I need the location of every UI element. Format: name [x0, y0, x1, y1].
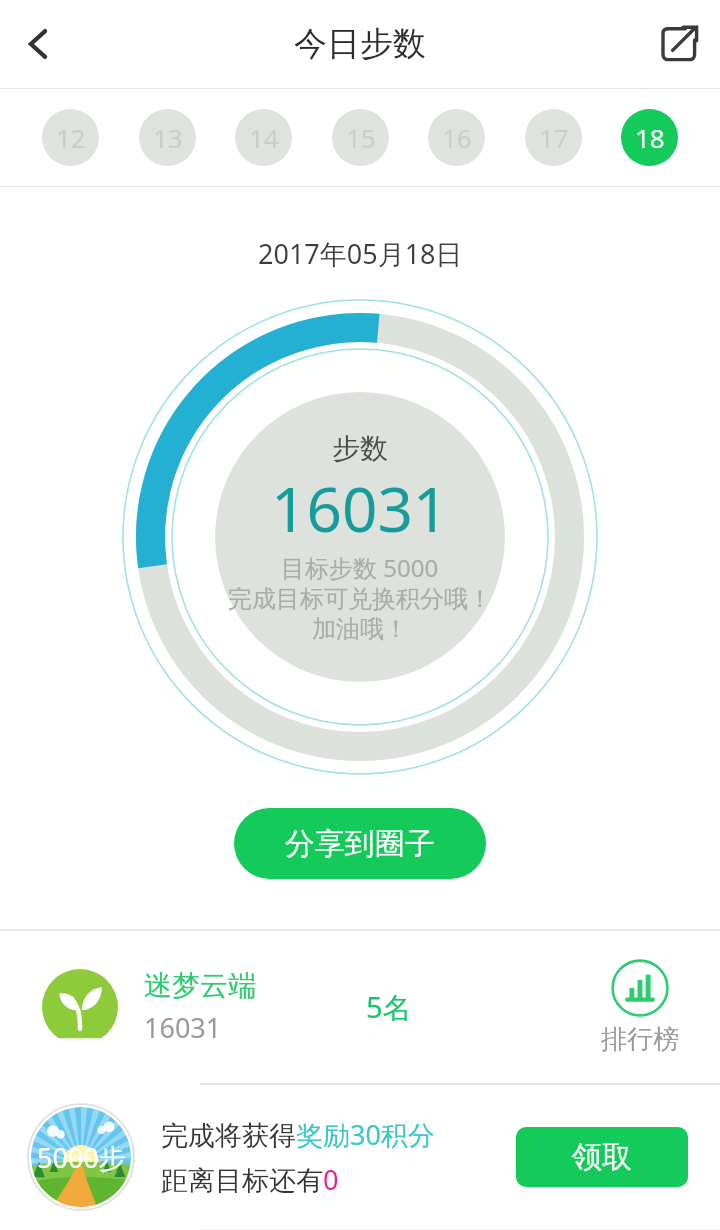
- button[interactable]: 18: [621, 109, 678, 166]
- button[interactable]: 12: [42, 109, 99, 166]
- staticText: 17: [539, 120, 569, 155]
- button[interactable]: 15: [332, 109, 389, 166]
- button[interactable]: 分享到圈子: [234, 808, 486, 879]
- staticText: 18: [635, 120, 665, 155]
- button[interactable]: Share: [638, 3, 720, 85]
- staticText: 迷梦云端: [144, 968, 256, 1003]
- staticText: 16031: [271, 466, 449, 550]
- button[interactable]: 14: [235, 109, 292, 166]
- staticText: 12: [56, 120, 86, 155]
- button[interactable]: Back: [0, 5, 78, 83]
- button[interactable]: 排行榜: [580, 959, 700, 1056]
- button[interactable]: 迷梦云端: [0, 931, 720, 1083]
- staticText: 5000步: [37, 1139, 126, 1176]
- staticText: 目标步数 5000: [281, 551, 439, 584]
- staticText: 完成将获得奖励30积分: [161, 1116, 435, 1153]
- staticText: 完成目标可兑换积分哦！: [228, 584, 492, 614]
- staticText: 5名: [366, 987, 412, 1027]
- staticText: 距离目标还有0: [161, 1161, 339, 1198]
- staticText: 加油哦！: [312, 614, 408, 644]
- button[interactable]: 17: [525, 109, 582, 166]
- staticText: 13: [153, 120, 183, 155]
- staticText: 分享到圈子: [285, 825, 435, 863]
- button[interactable]: 13: [139, 109, 196, 166]
- staticText: 步数: [332, 431, 388, 466]
- staticText: 领取: [572, 1138, 632, 1176]
- staticText: 15: [346, 120, 376, 155]
- staticText: 16: [442, 120, 472, 155]
- staticText: 14: [249, 120, 279, 155]
- staticText: 2017年05月18日: [258, 235, 463, 272]
- staticText: 今日步数: [294, 23, 426, 65]
- button[interactable]: 16: [428, 109, 485, 166]
- staticText: 排行榜: [601, 1023, 679, 1056]
- staticText: 16031: [144, 1009, 222, 1046]
- button[interactable]: 领取: [516, 1127, 688, 1187]
